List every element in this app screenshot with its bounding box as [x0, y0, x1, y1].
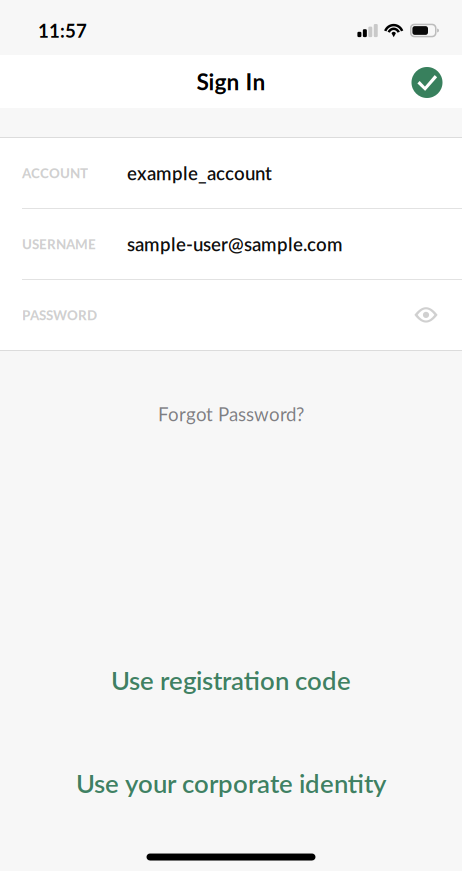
staticText: USERNAME	[22, 236, 96, 252]
staticText: sample-user@sample.com	[127, 233, 343, 255]
button[interactable]: Use your corporate identity	[0, 757, 462, 809]
staticText: Use registration code	[111, 665, 351, 695]
staticText: Forgot Password?	[158, 403, 304, 425]
staticText: Use your corporate identity	[76, 768, 386, 798]
staticText: example_account	[127, 162, 272, 184]
button[interactable]: Forgot Password?	[0, 351, 462, 456]
staticText: 11:57	[38, 19, 87, 42]
staticText: ACCOUNT	[22, 165, 88, 181]
button[interactable]: Use registration code	[0, 654, 462, 706]
staticText: Sign In	[196, 68, 265, 95]
button[interactable]: Confirm sign in	[405, 58, 449, 104]
button[interactable]: Show password	[406, 298, 446, 331]
staticText: PASSWORD	[22, 307, 97, 323]
